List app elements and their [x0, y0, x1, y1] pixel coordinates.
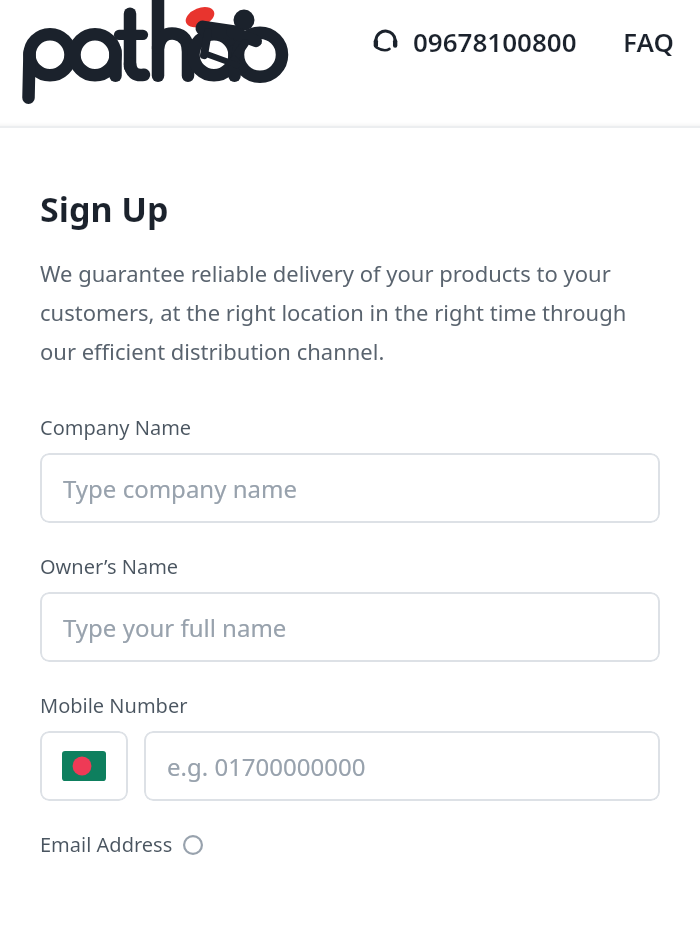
staticText: Sign Up: [40, 186, 169, 232]
staticText: We guarantee reliable delivery of your p…: [40, 258, 660, 366]
button[interactable]: Type company name: [40, 453, 660, 523]
button[interactable]: Pathao home: [32, 4, 228, 82]
staticText: Owner’s Name: [40, 553, 179, 580]
staticText: Type company name: [63, 472, 297, 505]
staticText: Mobile Number: [40, 692, 188, 719]
button[interactable]: FAQ: [623, 18, 674, 65]
staticText: FAQ: [623, 24, 674, 59]
button[interactable]: e.g. 01700000000: [144, 731, 660, 801]
button[interactable]: Select country, Bangladesh: [40, 731, 128, 801]
staticText: Email Address: [40, 831, 173, 858]
button[interactable]: Type your full name: [40, 592, 660, 662]
staticText: Company Name: [40, 414, 192, 441]
staticText: e.g. 01700000000: [167, 750, 366, 783]
staticText: Type your full name: [63, 611, 287, 644]
button[interactable]: Call support: [371, 18, 577, 65]
other: Call support: [371, 27, 400, 56]
staticText: 09678100800: [413, 24, 577, 59]
button[interactable]: Email info: [183, 835, 203, 855]
